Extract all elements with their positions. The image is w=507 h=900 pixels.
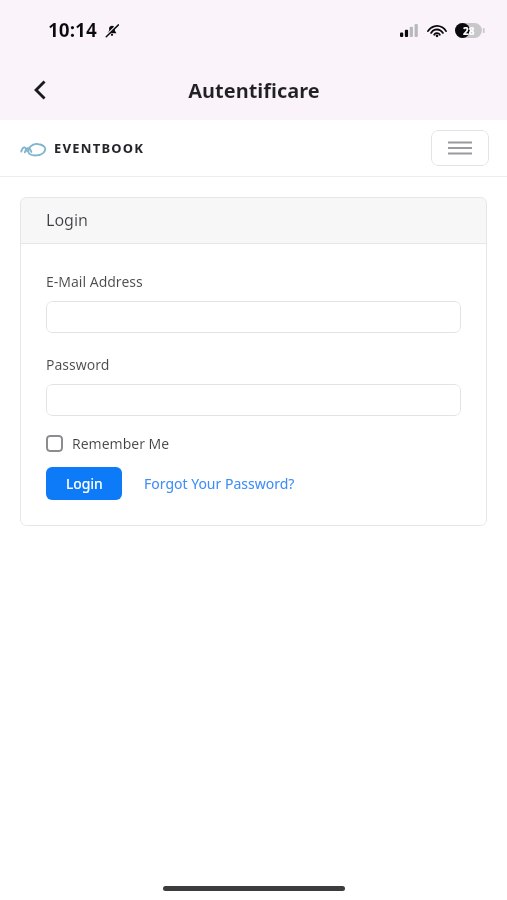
button[interactable]: Back (18, 68, 62, 112)
button[interactable]: EVENTBOOK (20, 138, 145, 158)
staticText: 10:14 (48, 17, 97, 43)
staticText: Password (46, 355, 110, 374)
staticText: Remember Me (72, 434, 170, 453)
staticText: EVENTBOOK (54, 139, 145, 157)
staticText: E-Mail Address (46, 272, 143, 291)
button[interactable] (46, 301, 461, 333)
button[interactable]: Forgot Your Password? (144, 474, 295, 493)
button[interactable]: Login (46, 467, 122, 500)
staticText: Forgot Your Password? (144, 474, 295, 493)
button[interactable]: Menu (431, 130, 489, 166)
staticText: Autentificare (188, 77, 320, 104)
button[interactable] (46, 384, 461, 416)
button[interactable]: Remember Me (46, 434, 170, 453)
staticText: 28 (463, 24, 475, 38)
staticText: Login (66, 474, 103, 493)
staticText: Login (46, 209, 88, 231)
